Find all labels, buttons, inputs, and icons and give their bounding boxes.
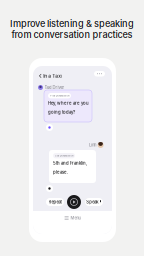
button[interactable]: Speak	[85, 198, 103, 206]
staticText: Play pronunciation	[50, 94, 69, 97]
staticText: Menu	[70, 215, 80, 220]
staticText: Improve listening & speaking	[10, 18, 134, 29]
staticText: please.	[53, 169, 68, 175]
staticText: from conversation practices	[11, 29, 132, 40]
staticText: 5th and Franklin,	[53, 160, 87, 166]
staticText: going today?	[48, 109, 75, 115]
staticText: Hey, where are you	[48, 100, 89, 106]
button[interactable]: More options	[94, 71, 105, 76]
button[interactable]: Play audio	[46, 124, 53, 131]
staticText: Say pronunciation	[55, 154, 73, 157]
button[interactable]: Menu	[33, 213, 112, 223]
button[interactable]: Repeat	[46, 198, 64, 206]
button[interactable]: In a Taxi	[38, 71, 63, 81]
staticText: In a Taxi	[43, 73, 62, 79]
staticText: Taxi Driver	[45, 85, 65, 90]
button[interactable]: Play audio	[46, 185, 53, 192]
staticText: Linh	[89, 142, 96, 147]
button[interactable]: Record	[67, 195, 81, 209]
staticText: Speak	[86, 199, 98, 204]
staticText: Repeat	[48, 199, 61, 204]
